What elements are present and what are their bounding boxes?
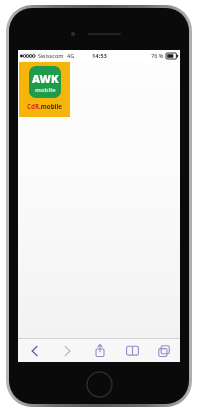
other: AWK mobile bookmark <box>29 66 61 98</box>
staticText: mobile <box>35 86 56 94</box>
button[interactable]: AWK mobile bookmark <box>19 62 70 117</box>
staticText: AWK <box>32 71 59 86</box>
button[interactable]: Forward <box>51 339 84 362</box>
staticText: CdR.mobile <box>27 102 62 110</box>
staticText: 4G <box>67 52 75 59</box>
button[interactable]: Share <box>84 339 116 362</box>
staticText: Swisscom <box>38 52 64 59</box>
button[interactable]: Bookmarks <box>116 339 148 362</box>
button[interactable]: Tabs <box>148 339 180 362</box>
staticText: 14:53 <box>92 52 107 60</box>
button[interactable]: Back <box>18 339 51 362</box>
staticText: 76 % <box>151 52 164 59</box>
